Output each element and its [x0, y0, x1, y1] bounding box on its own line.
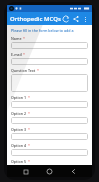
staticText: Please fill in the form below to add a q…: [11, 28, 88, 33]
button[interactable]: Home: [44, 166, 55, 177]
button[interactable]: More options: [81, 15, 89, 23]
staticText: *: [23, 52, 25, 57]
staticText: Option 2: [11, 111, 27, 116]
button[interactable]: [11, 101, 88, 108]
staticText: *: [23, 36, 25, 41]
button[interactable]: [11, 117, 88, 124]
button[interactable]: [11, 133, 88, 140]
button[interactable]: Refresh: [61, 14, 71, 24]
staticText: Option 1: [11, 95, 27, 100]
staticText: Orthopedic MCQs Test: [10, 15, 61, 23]
button[interactable]: [11, 58, 88, 65]
staticText: *: [28, 143, 30, 148]
staticText: *: [28, 127, 30, 132]
staticText: *: [28, 95, 30, 100]
staticText: Option 5: [11, 159, 27, 164]
staticText: E-mail: [11, 52, 22, 57]
staticText: *: [37, 68, 39, 73]
staticText: Name: [11, 36, 22, 41]
button[interactable]: Recent apps: [20, 166, 31, 177]
staticText: Option 3: [11, 127, 27, 132]
staticText: Option 4: [11, 143, 27, 148]
button[interactable]: [11, 74, 88, 92]
button[interactable]: [11, 149, 88, 156]
button[interactable]: [11, 42, 88, 49]
button[interactable]: Share: [71, 14, 81, 24]
staticText: *: [28, 111, 30, 116]
staticText: Question Text: [11, 68, 36, 73]
staticText: *: [28, 159, 30, 164]
button[interactable]: Back: [68, 166, 79, 177]
